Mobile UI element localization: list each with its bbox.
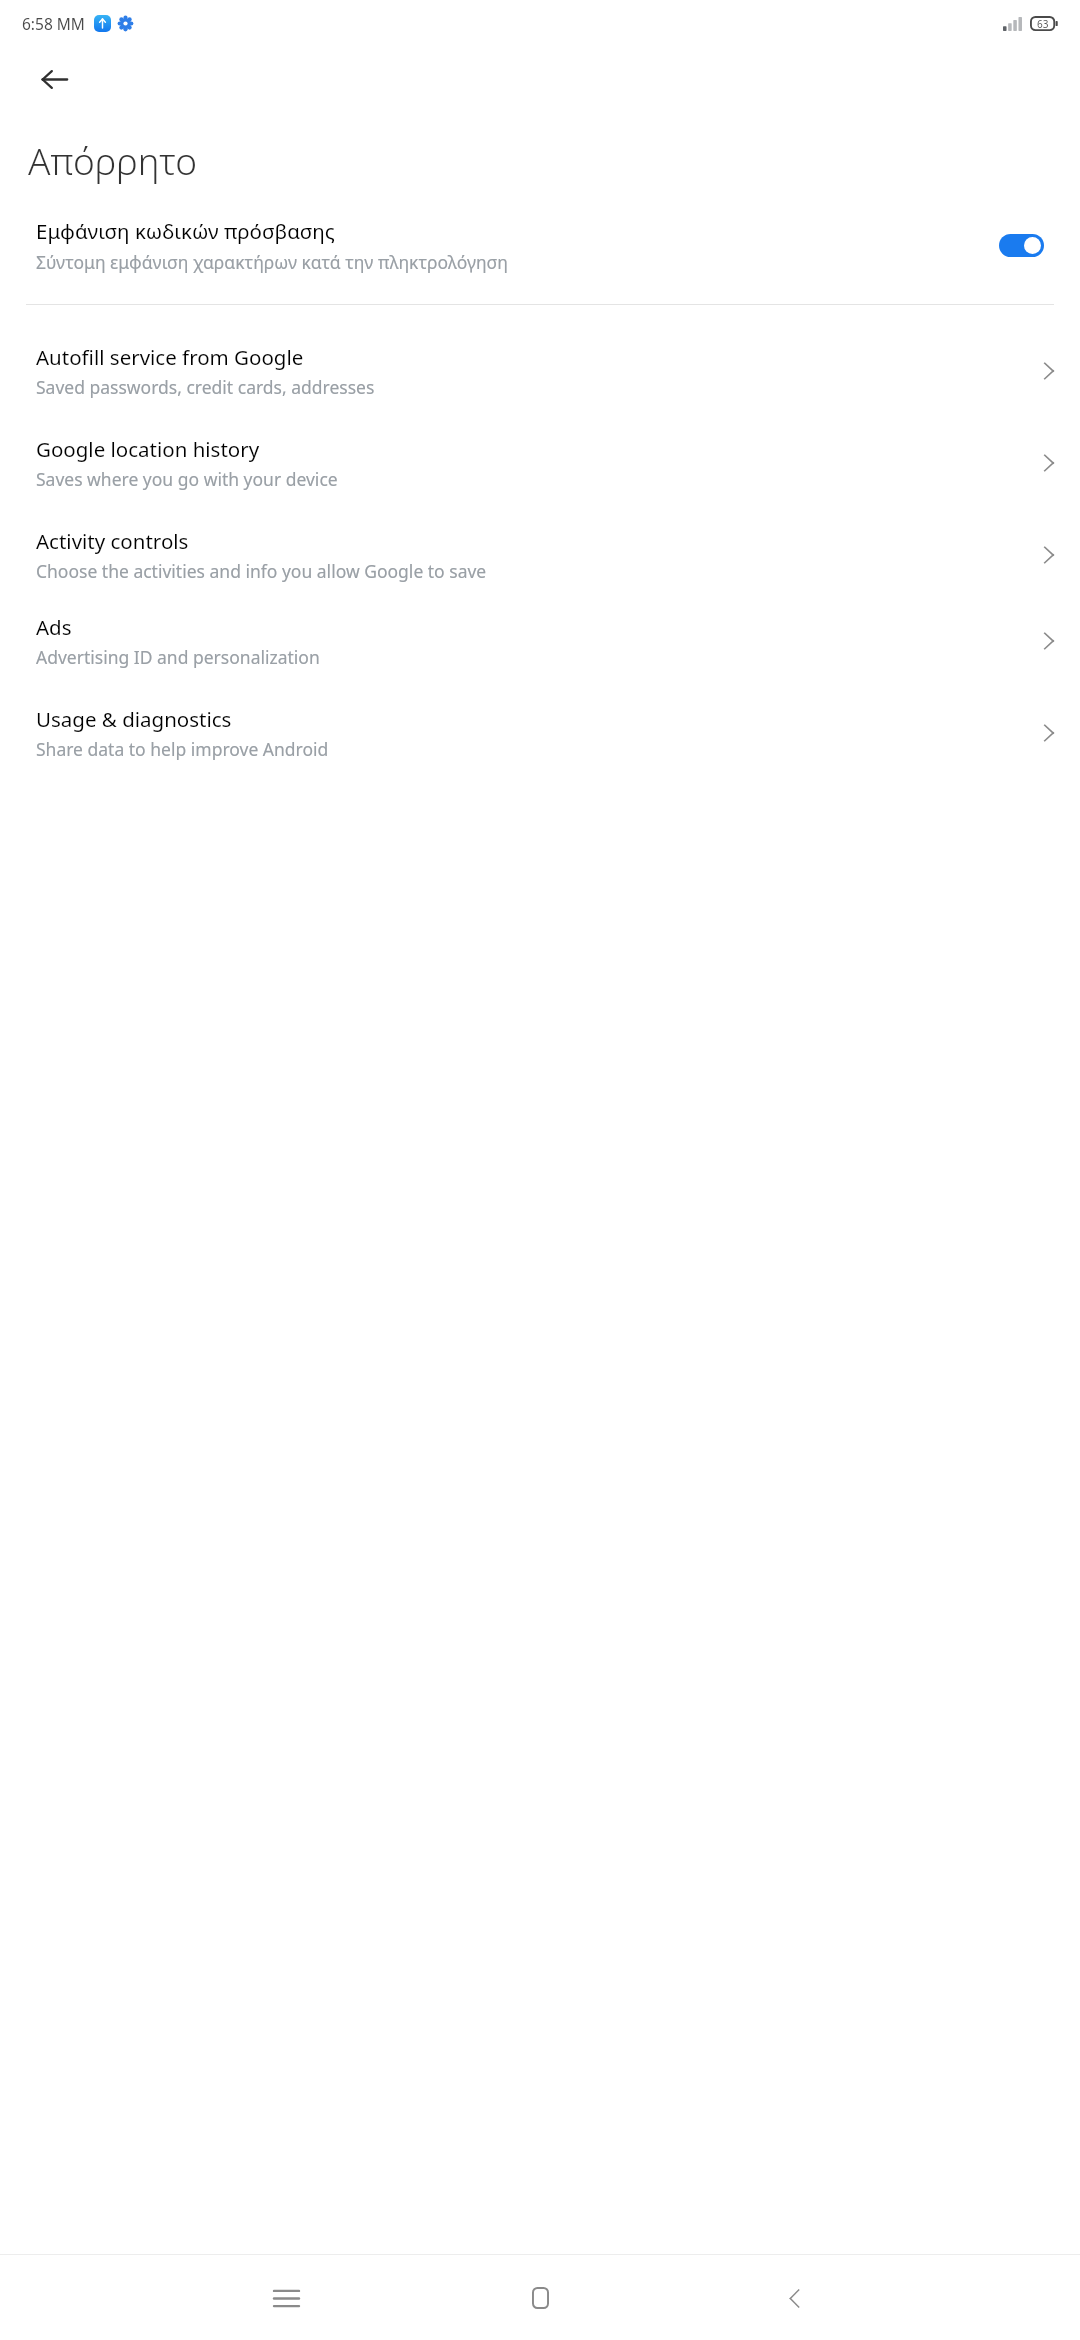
staticText: Advertising ID and personalization [36,645,320,669]
staticText: Choose the activities and info you allow… [36,559,487,583]
button[interactable]: Usage & diagnostics [0,703,1080,763]
staticText: Ads [36,613,72,641]
staticText: Σύντομη εμφάνιση χαρακτήρων κατά την πλη… [36,250,508,274]
staticText: Autofill service from Google [36,343,304,371]
button[interactable]: Autofill service from Google [0,341,1080,401]
staticText: Activity controls [36,527,189,555]
staticText: 63 [1037,17,1049,31]
staticText: Εμφάνιση κωδικών πρόσβασης [36,217,335,245]
button[interactable]: Recent apps [258,2270,314,2326]
button[interactable]: Home [512,2270,568,2326]
button[interactable]: Εμφάνιση κωδικών πρόσβασης [0,213,1080,278]
staticText: Απόρρητο [28,135,198,185]
button[interactable]: Back [766,2270,822,2326]
staticText: Google location history [36,435,260,463]
staticText: Usage & diagnostics [36,705,232,733]
staticText: 6:58 MM [22,13,85,34]
button[interactable]: Show passwords toggle [999,234,1044,257]
button[interactable]: Google location history [0,433,1080,493]
staticText: Share data to help improve Android [36,737,329,761]
button[interactable]: Ads [0,611,1080,671]
staticText: Saved passwords, credit cards, addresses [36,375,375,399]
staticText: Saves where you go with your device [36,467,338,491]
button[interactable]: Back [30,55,78,103]
button[interactable]: Activity controls [0,525,1080,585]
